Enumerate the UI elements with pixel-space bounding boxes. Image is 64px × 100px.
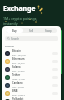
- staticText: BTC · $64,120: [12, 54, 26, 57]
- staticText: Sell: [29, 29, 34, 33]
- staticText: Solana: [12, 65, 21, 69]
- button[interactable]: Ethereum: [2, 57, 61, 65]
- button[interactable]: Polkadot: [2, 97, 61, 100]
- button[interactable]: Tether: [2, 73, 61, 81]
- staticText: Exchange: [3, 4, 36, 14]
- staticText: instantly: [3, 21, 18, 26]
- staticText: Cardano: [12, 81, 23, 85]
- staticText: Tether: [12, 73, 21, 77]
- staticText: Popular: [5, 44, 15, 47]
- button[interactable]: BNB: [2, 89, 61, 97]
- staticText: Swap: [45, 29, 52, 33]
- staticText: ETH · $3,210: [12, 62, 25, 65]
- staticText: BNB: [12, 89, 18, 93]
- staticText: BNB · $592.4: [12, 94, 26, 97]
- button[interactable]: Search: [5, 36, 58, 41]
- staticText: USDT · $1.00: [12, 78, 25, 81]
- staticText: Polkadot: [12, 97, 24, 100]
- staticText: 1M+ crypto pairings,: [3, 16, 38, 21]
- button[interactable]: Swap: [40, 28, 57, 33]
- button[interactable]: Bitcoin: [2, 49, 61, 57]
- button[interactable]: Cardano: [2, 81, 61, 89]
- button[interactable]: Buy: [6, 28, 23, 33]
- staticText: Ethereum: [12, 57, 25, 61]
- staticText: Buy: [12, 29, 17, 33]
- button[interactable]: Sell: [23, 28, 40, 33]
- staticText: Search: [11, 37, 20, 41]
- staticText: SOL · $148.2: [12, 70, 25, 73]
- staticText: ADA · $0.58: [12, 86, 24, 89]
- staticText: Bitcoin: [12, 49, 21, 53]
- button[interactable]: Solana: [2, 65, 61, 73]
